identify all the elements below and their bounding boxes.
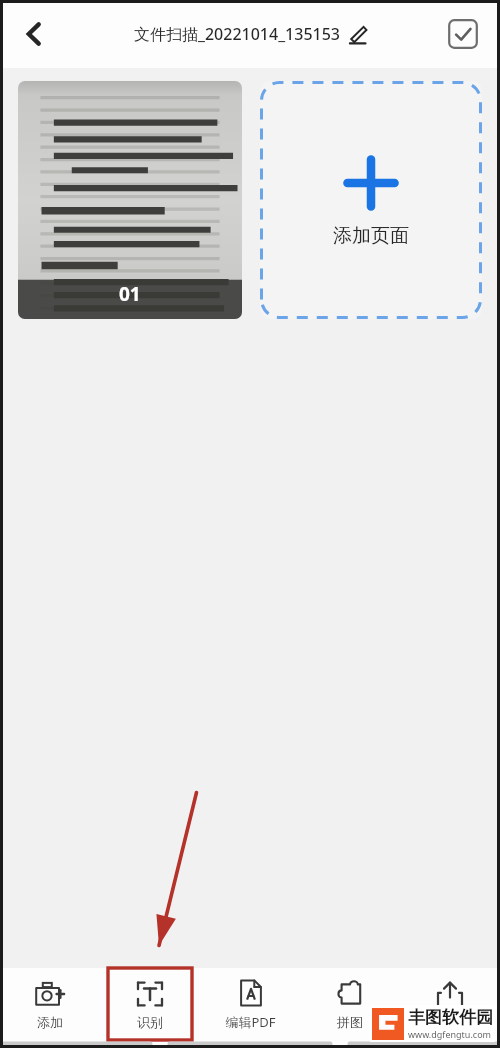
button[interactable]: Scanned page 1	[18, 81, 242, 319]
staticText: www.dgfengtu.com	[408, 1028, 492, 1040]
staticText: 编辑PDF	[225, 1013, 276, 1031]
staticText: 文件扫描_20221014_135153	[134, 23, 341, 45]
staticText: 添加页面	[333, 224, 409, 248]
button[interactable]: 识别	[100, 968, 200, 1040]
button[interactable]: Back	[6, 6, 62, 62]
button[interactable]: 编辑PDF	[200, 968, 300, 1040]
button[interactable]: 文件扫描_20221014_135153	[134, 23, 367, 45]
button[interactable]: 拼图	[300, 968, 400, 1040]
staticText: 拼图	[337, 1014, 363, 1030]
staticText: 添加	[37, 1014, 63, 1030]
button[interactable]: Confirm	[442, 13, 484, 55]
button[interactable]: 添加页面	[260, 81, 482, 319]
staticText: 识别	[137, 1014, 163, 1030]
button[interactable]: 分享	[400, 968, 500, 1040]
staticText: 丰图软件园	[408, 1007, 493, 1028]
button[interactable]: 添加	[0, 968, 100, 1040]
staticText: 01	[119, 281, 141, 307]
